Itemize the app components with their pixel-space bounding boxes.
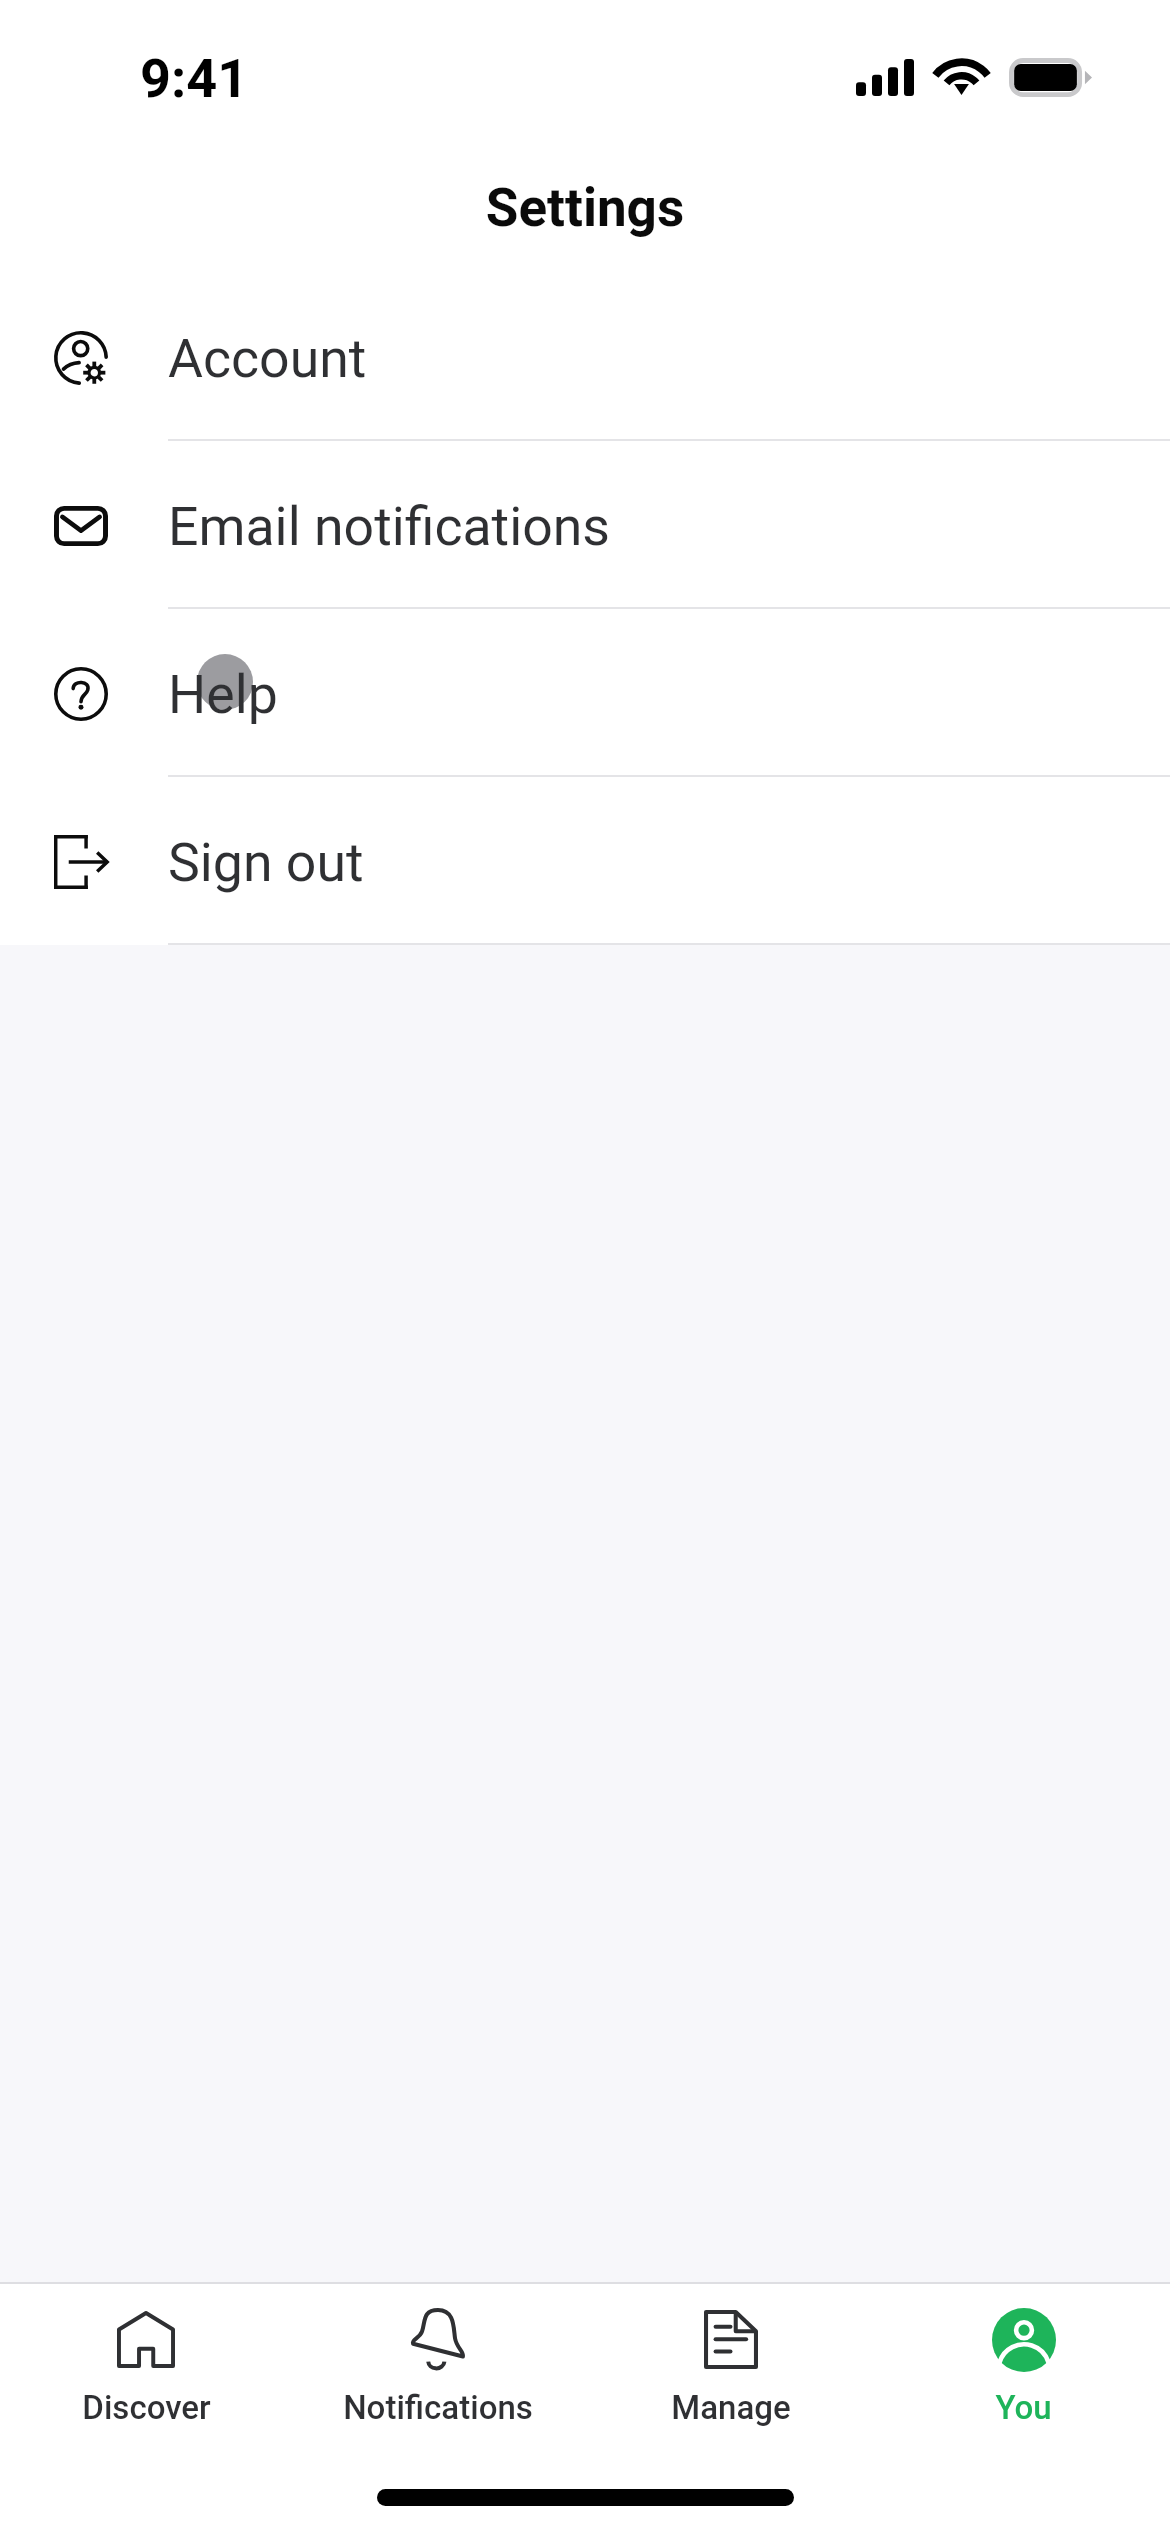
button[interactable]: You [877,2284,1170,2452]
button[interactable]: Help [0,609,1170,777]
button[interactable]: Discover [0,2284,292,2452]
staticText: You [995,2388,1052,2427]
staticText: Email notifications [168,495,610,558]
staticText: Settings [0,177,1170,239]
staticText: Account [168,327,367,390]
button[interactable]: Email notifications [0,441,1170,609]
staticText: Notifications [343,2388,533,2427]
button[interactable]: Notifications [292,2284,584,2452]
staticText: Help [168,663,278,726]
other: You [992,2308,1056,2372]
button[interactable]: Manage [584,2284,877,2452]
staticText: Manage [671,2388,791,2427]
staticText: Discover [82,2388,211,2427]
button[interactable]: Sign out [0,777,1170,945]
other: Notifications [410,2308,466,2369]
staticText: 9:41 [140,47,249,110]
other: Discover [117,2311,175,2368]
other: Manage [704,2310,758,2369]
button[interactable]: Account [0,273,1170,441]
staticText: Sign out [168,831,364,894]
